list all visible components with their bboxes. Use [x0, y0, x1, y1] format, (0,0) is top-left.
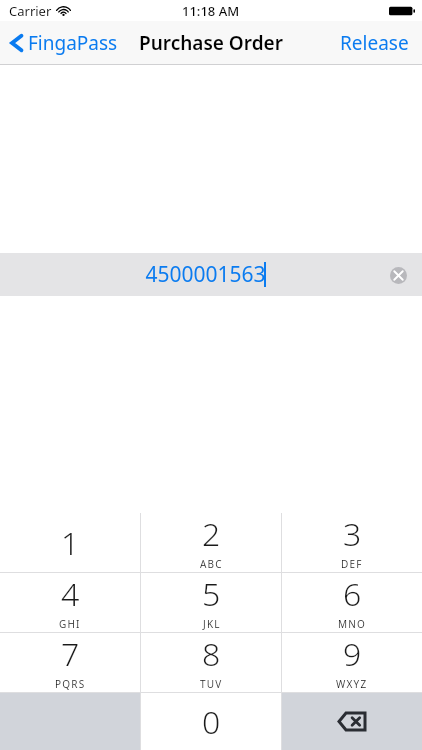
staticText: ABC	[200, 557, 223, 571]
button[interactable]: 3	[282, 513, 422, 572]
staticText: Carrier	[9, 2, 52, 20]
staticText: 4	[61, 572, 80, 616]
staticText: 2	[202, 512, 221, 556]
staticText: 7	[61, 632, 80, 676]
staticText: WXYZ	[336, 677, 368, 691]
button[interactable]: 6	[282, 573, 422, 632]
staticText: 1	[61, 521, 80, 565]
staticText: 11:18 AM	[182, 2, 240, 20]
staticText: 4500001563	[145, 260, 266, 289]
staticText: DEF	[341, 557, 363, 571]
staticText: FingaPass	[28, 30, 118, 56]
staticText: MNO	[338, 617, 367, 631]
staticText: 8	[202, 632, 221, 676]
button[interactable]: 2	[141, 513, 281, 572]
staticText: JKL	[203, 617, 221, 631]
staticText: 0	[202, 700, 221, 744]
button[interactable]: 1	[0, 513, 140, 572]
staticText: GHI	[59, 617, 81, 631]
staticText: PQRS	[55, 677, 86, 691]
button[interactable]: Clear text	[383, 260, 413, 290]
button[interactable]: 4500001563	[0, 253, 422, 296]
staticText: Release	[340, 30, 409, 56]
staticText: 5	[202, 572, 221, 616]
staticText: TUV	[200, 677, 223, 691]
staticText: 6	[343, 572, 362, 616]
button[interactable]: FingaPass	[0, 21, 126, 64]
button[interactable]: 8	[141, 633, 281, 692]
staticText: 9	[343, 632, 362, 676]
button[interactable]: Delete	[282, 693, 422, 750]
button[interactable]: 4	[0, 573, 140, 632]
button[interactable]: 0	[141, 693, 281, 750]
button[interactable]: 9	[282, 633, 422, 692]
button[interactable]: 7	[0, 633, 140, 692]
staticText: 3	[343, 512, 362, 556]
button[interactable]: Release	[327, 21, 422, 64]
staticText: Purchase Order	[139, 30, 283, 56]
button[interactable]: 5	[141, 573, 281, 632]
